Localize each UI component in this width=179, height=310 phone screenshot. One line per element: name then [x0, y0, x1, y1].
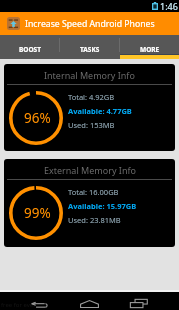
- staticText: Available: 15.97GB: [68, 201, 137, 211]
- staticText: 1:46: [160, 0, 178, 12]
- staticText: Increase Speed Android Phones: [25, 18, 155, 30]
- staticText: Available: 4.77GB: [68, 106, 132, 116]
- staticText: TASKS: [80, 45, 100, 54]
- button[interactable]: TASKS: [60, 35, 119, 59]
- button[interactable]: BOOST: [0, 35, 59, 59]
- staticText: free for ever: [1, 301, 36, 309]
- button[interactable]: Recent apps: [130, 299, 148, 308]
- staticText: Used: 153MB: [68, 120, 115, 130]
- staticText: 96%: [24, 109, 51, 127]
- button[interactable]: External Memory Info: [4, 159, 175, 247]
- button[interactable]: Back: [31, 302, 49, 308]
- staticText: Total: 4.92GB: [68, 92, 115, 102]
- staticText: BOOST: [19, 45, 41, 54]
- button[interactable]: MORE: [120, 35, 179, 59]
- staticText: 99%: [24, 204, 51, 222]
- button[interactable]: Home: [80, 300, 99, 308]
- staticText: Used: 23.81MB: [68, 215, 121, 225]
- staticText: Internal Memory Info: [44, 69, 135, 81]
- staticText: Total: 16.00GB: [68, 187, 119, 197]
- button[interactable]: Internal Memory Info: [4, 64, 175, 151]
- staticText: External Memory Info: [44, 164, 136, 176]
- staticText: MORE: [140, 45, 160, 54]
